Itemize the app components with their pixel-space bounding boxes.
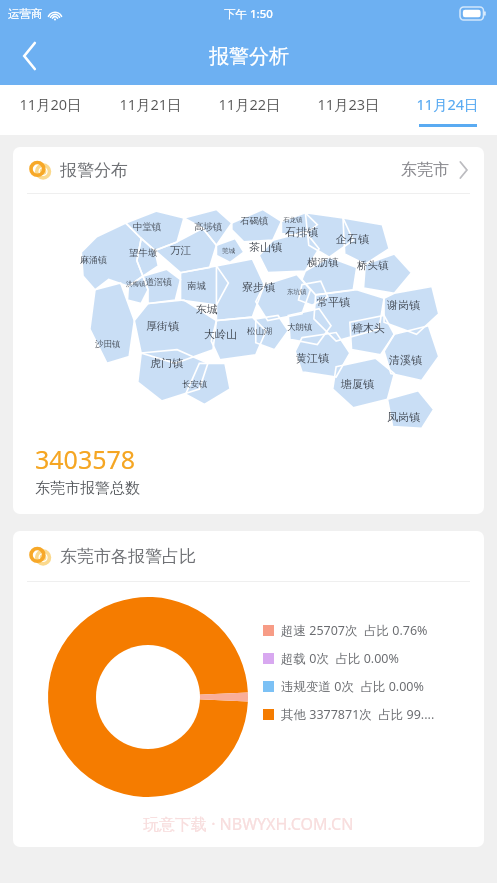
staticText: 石龙镇 xyxy=(283,216,303,224)
button[interactable]: 11月22日 xyxy=(200,85,299,135)
staticText: 东莞市各报警占比 xyxy=(60,546,196,567)
staticText: 东莞市 xyxy=(401,160,449,180)
staticText: 高埗镇 xyxy=(194,221,223,233)
staticText: 樟木头 xyxy=(352,321,385,335)
staticText: 报警分析 xyxy=(209,44,289,69)
button[interactable]: 11月24日 xyxy=(398,85,497,135)
staticText: 玩意下载 · NBWYXH.COM.CN xyxy=(143,813,354,835)
staticText: 望牛墩 xyxy=(129,247,158,259)
button[interactable]: 11月23日 xyxy=(299,85,398,135)
staticText: 常平镇 xyxy=(317,295,350,309)
staticText: 石排镇 xyxy=(285,225,318,239)
staticText: 运营商 xyxy=(8,7,43,21)
staticText: 11月24日 xyxy=(416,94,479,114)
staticText: 桥头镇 xyxy=(357,259,389,272)
staticText: 洪梅镇 xyxy=(126,280,146,288)
button[interactable]: Back xyxy=(5,31,55,81)
staticText: 莞城 xyxy=(222,247,235,255)
staticText: 南城 xyxy=(187,280,206,292)
button[interactable]: 11月21日 xyxy=(100,85,200,135)
staticText: 石碣镇 xyxy=(240,215,269,227)
staticText: 大朗镇 xyxy=(287,322,313,333)
staticText: 虎门镇 xyxy=(150,356,183,370)
staticText: 谢岗镇 xyxy=(387,298,420,312)
staticText: 塘厦镇 xyxy=(341,377,374,391)
staticText: 麻涌镇 xyxy=(80,254,107,265)
staticText: 横沥镇 xyxy=(307,256,339,269)
staticText: 松山湖 xyxy=(247,326,273,337)
staticText: 长安镇 xyxy=(182,379,208,390)
button[interactable]: 报警分布 xyxy=(13,147,484,193)
staticText: 东莞市报警总数 xyxy=(35,479,140,498)
staticText: 凤岗镇 xyxy=(387,410,420,424)
staticText: 11月22日 xyxy=(218,94,281,114)
staticText: 3403578 xyxy=(35,442,136,476)
staticText: 道滘镇 xyxy=(145,276,172,287)
staticText: 超载 0次 占比 0.00% xyxy=(281,650,399,667)
staticText: 黄江镇 xyxy=(296,351,329,365)
staticText: 中堂镇 xyxy=(133,221,162,233)
button[interactable]: 11月20日 xyxy=(0,85,100,135)
staticText: 东坑镇 xyxy=(287,288,307,296)
staticText: 报警分布 xyxy=(60,160,128,181)
button[interactable]: 东莞市各报警占比 xyxy=(13,531,484,581)
staticText: 东城 xyxy=(196,302,218,316)
staticText: 企石镇 xyxy=(336,232,369,246)
staticText: 清溪镇 xyxy=(389,353,422,367)
staticText: 超速 25707次 占比 0.76% xyxy=(281,622,428,639)
staticText: 寮步镇 xyxy=(242,280,275,294)
staticText: 11月20日 xyxy=(19,94,82,114)
staticText: 11月21日 xyxy=(119,94,182,114)
staticText: 大岭山 xyxy=(204,327,237,341)
staticText: 茶山镇 xyxy=(249,240,282,254)
staticText: 厚街镇 xyxy=(146,319,179,333)
staticText: 违规变道 0次 占比 0.00% xyxy=(281,678,424,695)
staticText: 下午 1:50 xyxy=(224,6,273,22)
staticText: 其他 3377871次 占比 99.... xyxy=(281,706,435,723)
staticText: 11月23日 xyxy=(317,94,380,114)
staticText: 沙田镇 xyxy=(95,339,121,350)
staticText: 万江 xyxy=(170,244,191,257)
